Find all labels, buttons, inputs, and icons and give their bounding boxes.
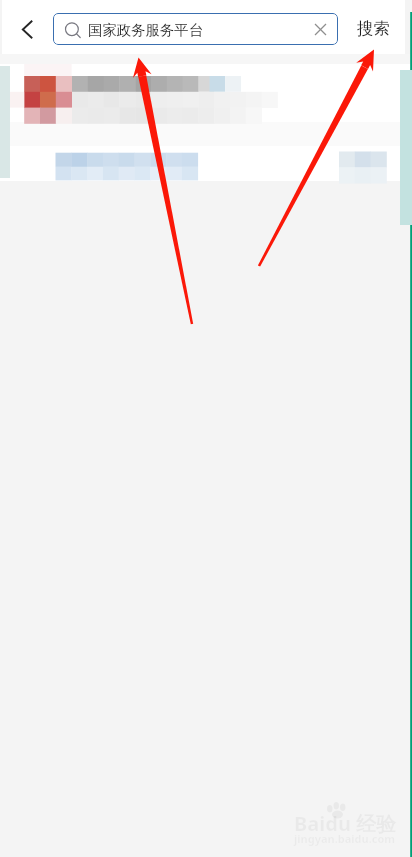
staticText: 国家政务服务平台	[88, 21, 204, 39]
button[interactable]: Back	[4, 6, 50, 52]
staticText: Baidu 经验	[294, 810, 397, 837]
button[interactable]: Clear	[302, 13, 338, 45]
staticText: jingyan.baidu.com	[294, 831, 396, 846]
button[interactable]: 国家政务服务平台	[53, 13, 338, 45]
staticText: 搜索	[357, 18, 390, 39]
button[interactable]: 搜索	[344, 6, 402, 48]
